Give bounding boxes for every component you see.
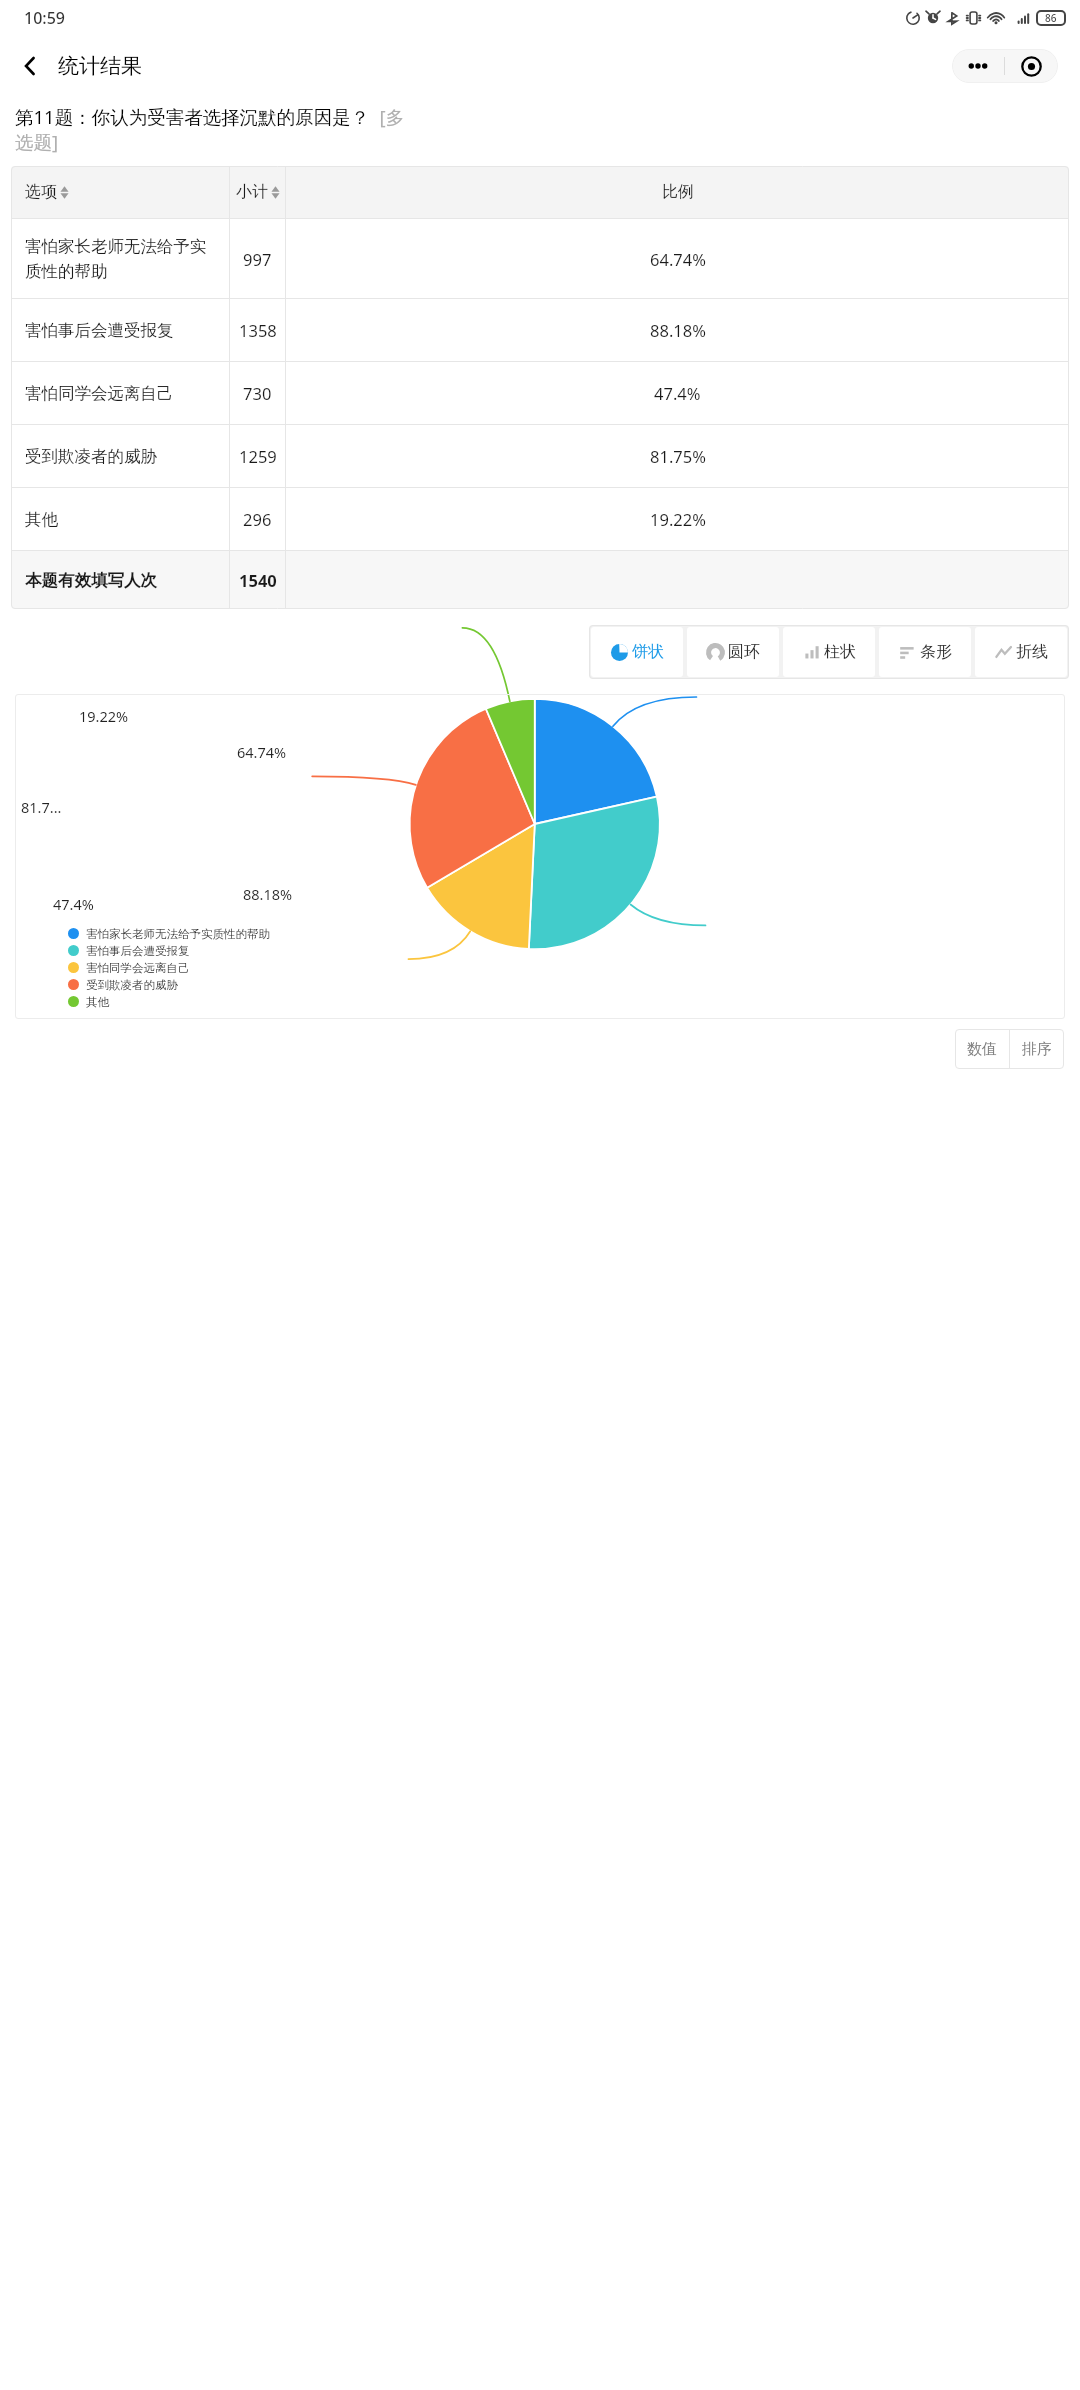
button[interactable]: 柱状 xyxy=(783,627,875,677)
button[interactable]: 其他 xyxy=(11,488,1069,550)
button[interactable]: 返回 xyxy=(8,44,52,88)
staticText: 88.18% xyxy=(243,884,293,904)
staticText: 47.4% xyxy=(654,382,701,404)
staticText: 害怕事后会遭受报复 xyxy=(86,944,190,958)
button[interactable]: 害怕同学会远离自己 xyxy=(11,362,1069,424)
staticText: 64.74% xyxy=(650,248,706,270)
staticText: 81.75% xyxy=(650,445,706,467)
staticText: 选项 xyxy=(25,182,57,202)
staticText: 997 xyxy=(243,248,272,270)
staticText: 受到欺凌者的威胁 xyxy=(25,446,157,467)
staticText: 比例 xyxy=(662,182,694,202)
staticText: 折线 xyxy=(1016,642,1048,662)
staticText: 88.18% xyxy=(650,319,706,341)
staticText: 81.7... xyxy=(21,797,62,817)
button[interactable]: 更多 xyxy=(952,49,1004,83)
staticText: 害怕同学会远离自己 xyxy=(86,961,190,975)
staticText: 受到欺凌者的威胁 xyxy=(86,978,178,992)
staticText: 数值 xyxy=(967,1040,997,1059)
button[interactable]: 饼状 xyxy=(591,627,683,677)
staticText: 排序 xyxy=(1022,1040,1052,1059)
button[interactable]: 折线 xyxy=(975,627,1067,677)
staticText: 其他 xyxy=(86,995,109,1009)
staticText: 害怕事后会遭受报复 xyxy=(25,320,174,341)
staticText: 饼状 xyxy=(632,642,664,662)
staticText: 小计 xyxy=(236,182,268,202)
staticText: 19.22% xyxy=(79,706,129,726)
staticText: 害怕家长老师无法给予实质性的帮助 xyxy=(25,236,215,282)
button[interactable]: 圆环 xyxy=(687,627,779,677)
staticText: 选题] xyxy=(15,129,59,154)
staticText: 条形 xyxy=(920,642,952,662)
button[interactable]: 害怕家长老师无法给予实质性的帮助 xyxy=(11,219,1069,298)
staticText: 47.4% xyxy=(53,894,94,914)
button[interactable]: 条形 xyxy=(879,627,971,677)
button[interactable]: 数值 xyxy=(955,1029,1009,1069)
button[interactable]: 排序 xyxy=(1010,1029,1064,1069)
staticText: 86 xyxy=(1045,11,1057,25)
staticText: 64.74% xyxy=(237,742,287,762)
button[interactable]: 害怕事后会遭受报复 xyxy=(11,299,1069,361)
staticText: 730 xyxy=(243,382,272,404)
staticText: 1259 xyxy=(239,445,277,467)
staticText: 统计结果 xyxy=(58,53,142,79)
staticText: 本题有效填写人次 xyxy=(25,570,157,591)
staticText: 柱状 xyxy=(824,642,856,662)
staticText: 1358 xyxy=(239,319,277,341)
staticText: 害怕同学会远离自己 xyxy=(25,383,174,404)
staticText: 296 xyxy=(243,508,272,530)
staticText: 10:59 xyxy=(24,7,65,29)
staticText: 圆环 xyxy=(728,642,760,662)
staticText: [多 xyxy=(370,104,405,129)
staticText: 第11题：你认为受害者选择沉默的原因是？ xyxy=(15,104,370,129)
button[interactable]: 关闭 xyxy=(1005,49,1058,83)
button[interactable]: 受到欺凌者的威胁 xyxy=(11,425,1069,487)
staticText: 其他 xyxy=(25,509,58,530)
staticText: 1540 xyxy=(239,569,277,591)
staticText: 19.22% xyxy=(650,508,706,530)
staticText: 害怕家长老师无法给予实质性的帮助 xyxy=(86,927,270,941)
